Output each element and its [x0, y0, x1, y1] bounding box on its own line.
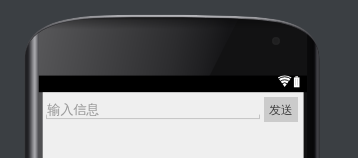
button[interactable]: [264, 97, 298, 122]
